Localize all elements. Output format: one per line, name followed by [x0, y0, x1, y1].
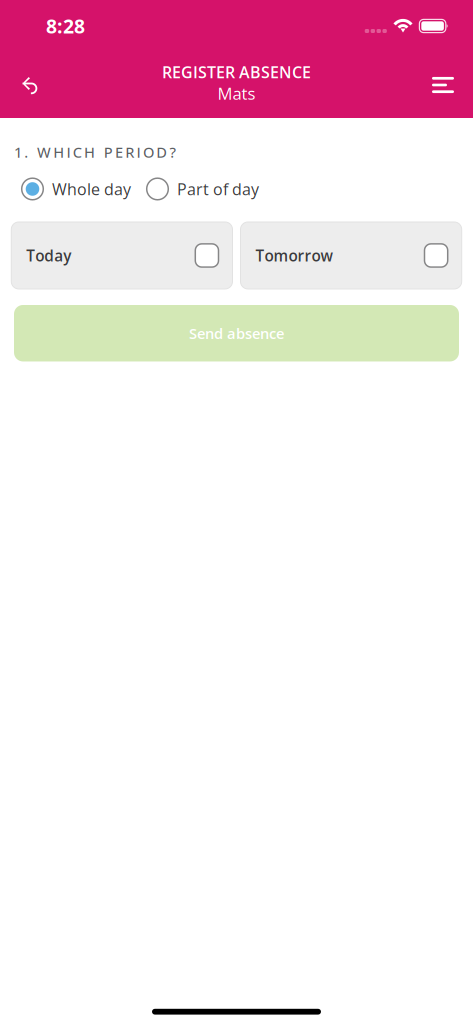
- button[interactable]: Part of day: [146, 177, 259, 200]
- staticText: Send absence: [189, 323, 284, 343]
- staticText: Whole day: [52, 178, 131, 200]
- button[interactable]: Send absence: [14, 305, 459, 361]
- staticText: Today: [26, 245, 71, 266]
- staticText: 1. WHICH PERIOD?: [14, 142, 175, 162]
- button[interactable]: Whole day: [21, 177, 131, 200]
- staticText: 8:28: [46, 13, 85, 39]
- staticText: REGISTER ABSENCE: [162, 61, 311, 83]
- staticText: Part of day: [177, 178, 259, 200]
- button[interactable]: Menu: [415, 55, 473, 115]
- button[interactable]: Tomorrow: [240, 222, 462, 289]
- button[interactable]: Today: [11, 222, 232, 289]
- button[interactable]: Back: [0, 55, 58, 115]
- staticText: Mats: [217, 82, 255, 105]
- staticText: Tomorrow: [255, 245, 333, 266]
